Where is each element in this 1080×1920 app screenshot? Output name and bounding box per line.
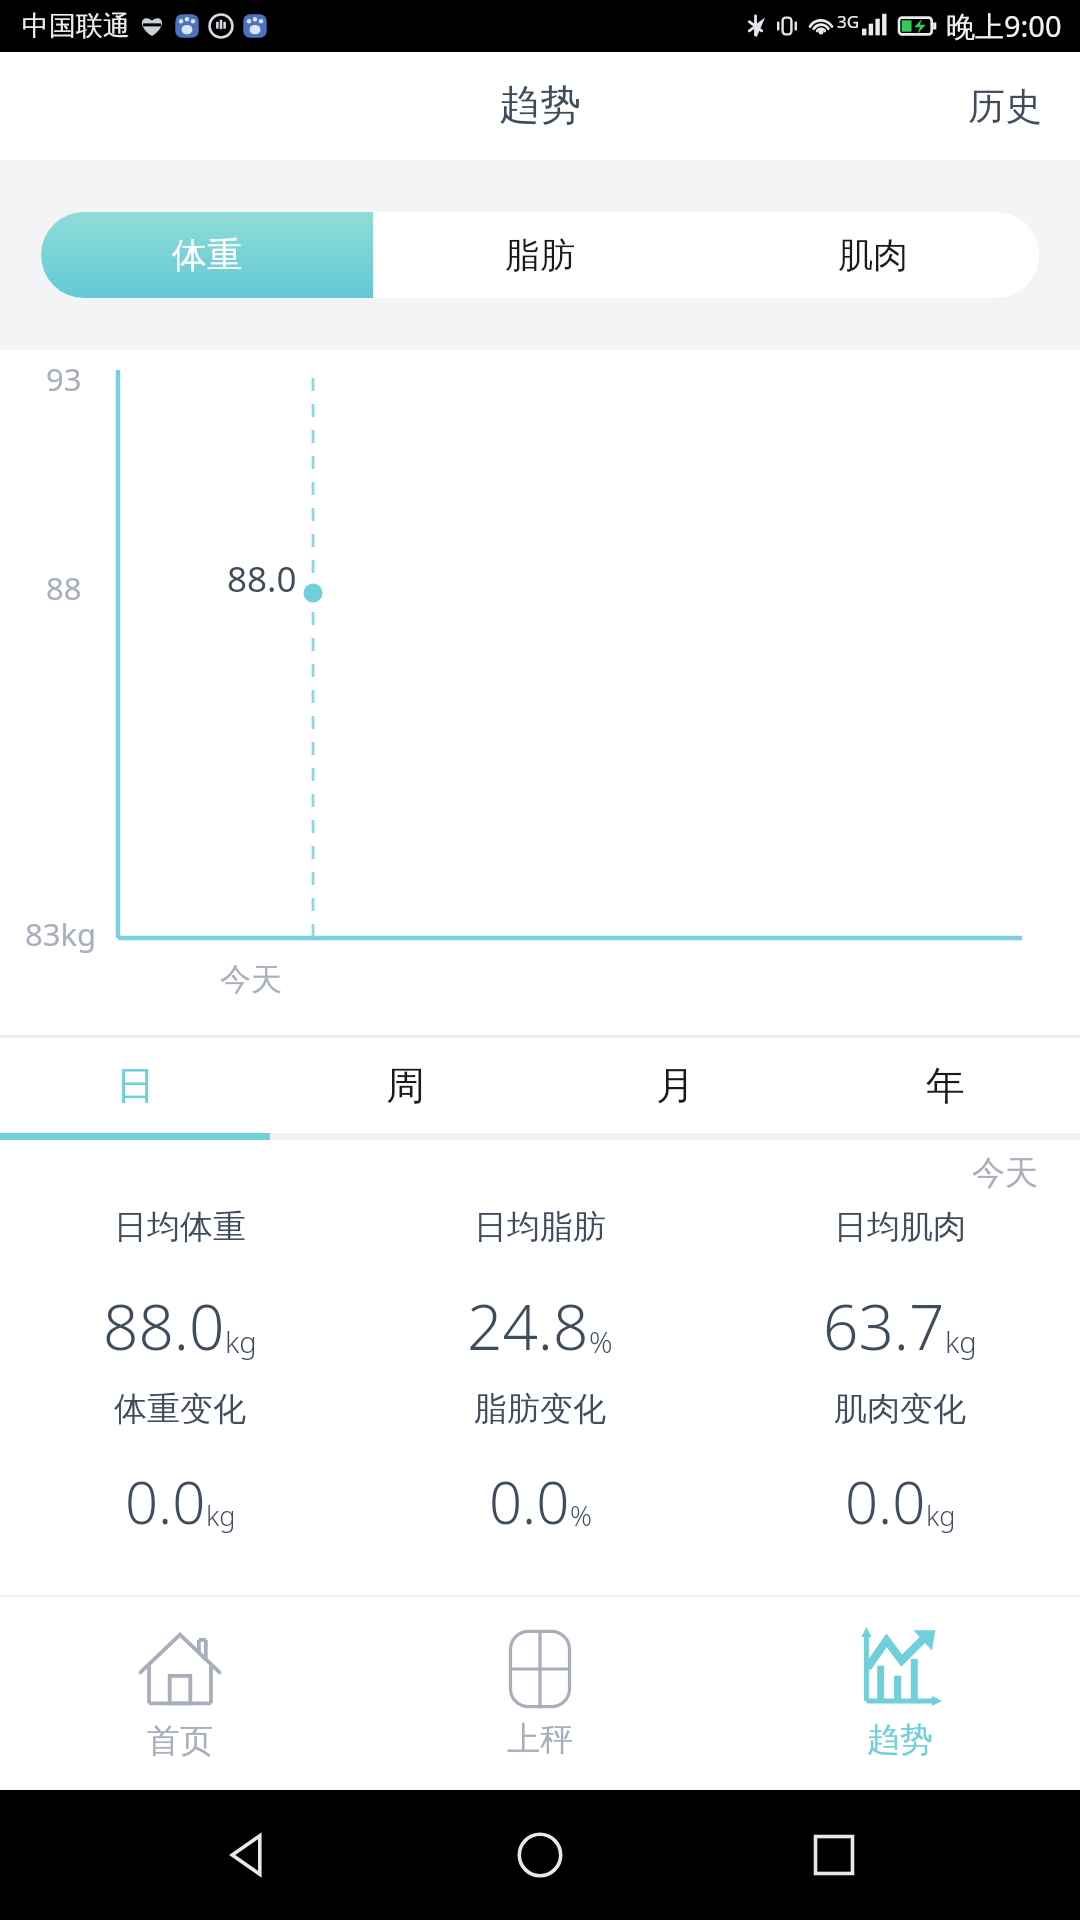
button[interactable]: 肌肉 xyxy=(706,212,1039,298)
staticText: 月 xyxy=(656,1061,695,1110)
staticText: 肌肉变化 xyxy=(834,1388,966,1430)
staticText: % xyxy=(570,1497,592,1534)
staticText: 日均肌肉 xyxy=(834,1206,966,1248)
staticText: 今天 xyxy=(972,1152,1038,1194)
button[interactable]: 日 xyxy=(0,1038,270,1133)
button[interactable]: Home xyxy=(492,1807,588,1903)
staticText: 中国联通 xyxy=(22,9,130,43)
staticText: kg xyxy=(945,1322,977,1361)
staticText: 肌肉 xyxy=(838,233,908,277)
staticText: 周 xyxy=(386,1061,425,1110)
button[interactable]: 日均体重 xyxy=(0,1206,360,1541)
staticText: 趋势 xyxy=(867,1719,933,1761)
button[interactable]: 日均脂肪 xyxy=(360,1206,720,1541)
staticText: 日均体重 xyxy=(114,1206,246,1248)
staticText: 0.0 xyxy=(845,1462,926,1541)
staticText: 0.0 xyxy=(125,1462,206,1541)
staticText: 趋势 xyxy=(499,80,581,132)
staticText: 首页 xyxy=(147,1720,213,1762)
staticText: 83kg xyxy=(25,913,97,955)
button[interactable]: Recents xyxy=(786,1807,882,1903)
staticText: 体重变化 xyxy=(114,1388,246,1430)
staticText: 体重 xyxy=(172,233,242,277)
button[interactable]: 月 xyxy=(540,1038,810,1133)
staticText: kg xyxy=(926,1497,956,1534)
staticText: 上秤 xyxy=(507,1718,573,1760)
staticText: 年 xyxy=(926,1061,965,1110)
staticText: 脂肪变化 xyxy=(474,1388,606,1430)
button[interactable]: 年 xyxy=(810,1038,1080,1133)
staticText: kg xyxy=(225,1322,257,1361)
button[interactable]: 上秤 xyxy=(360,1597,720,1790)
staticText: kg xyxy=(206,1497,236,1534)
staticText: 历史 xyxy=(968,83,1042,130)
staticText: 24.8 xyxy=(467,1284,589,1368)
button[interactable]: 体重 xyxy=(41,212,373,298)
button[interactable]: 日均肌肉 xyxy=(720,1206,1080,1541)
staticText: 日 xyxy=(116,1061,155,1110)
staticText: 88.0 xyxy=(227,555,297,603)
staticText: 晚上9:00 xyxy=(946,6,1062,46)
button[interactable]: 脂肪 xyxy=(373,212,706,298)
staticText: 脂肪 xyxy=(505,233,575,277)
staticText: 93 xyxy=(46,358,82,400)
button[interactable]: 首页 xyxy=(0,1597,360,1790)
button[interactable]: 趋势 xyxy=(483,64,597,148)
staticText: 88 xyxy=(46,567,82,609)
button[interactable]: 历史 xyxy=(930,61,1080,152)
staticText: 0.0 xyxy=(489,1462,570,1541)
button[interactable]: 趋势 xyxy=(720,1597,1080,1790)
staticText: 88.0 xyxy=(103,1284,225,1368)
staticText: 3G xyxy=(837,10,860,33)
staticText: 日均脂肪 xyxy=(474,1206,606,1248)
button[interactable]: Back xyxy=(198,1807,294,1903)
staticText: % xyxy=(589,1322,613,1361)
staticText: 63.7 xyxy=(823,1284,945,1368)
staticText: 今天 xyxy=(220,960,282,999)
button[interactable]: 周 xyxy=(270,1038,540,1133)
